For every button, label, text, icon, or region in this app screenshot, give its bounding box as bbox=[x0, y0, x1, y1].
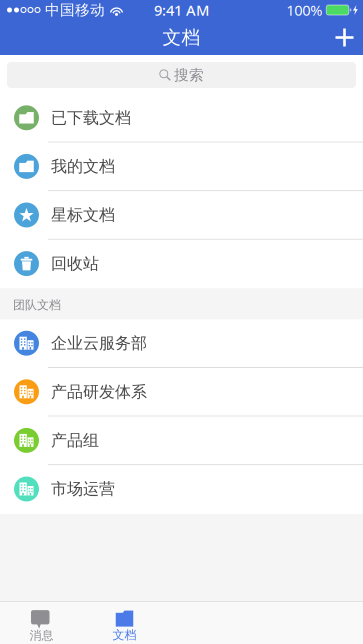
button[interactable]: 已下载文档 bbox=[0, 94, 363, 143]
button[interactable]: 消息 bbox=[0, 602, 83, 644]
staticText: 产品组 bbox=[51, 431, 99, 450]
button[interactable]: 星标文档 bbox=[0, 191, 363, 240]
staticText: 团队文档 bbox=[13, 297, 61, 312]
button[interactable]: 我的文档 bbox=[0, 143, 363, 191]
button[interactable]: 企业云服务部 bbox=[0, 319, 363, 368]
staticText: 市场运营 bbox=[51, 479, 115, 499]
button[interactable]: 市场运营 bbox=[0, 465, 363, 514]
button[interactable]: 产品研发体系 bbox=[0, 368, 363, 417]
staticText: 文档 bbox=[112, 628, 136, 642]
button[interactable]: 产品组 bbox=[0, 417, 363, 465]
staticText: 文档 bbox=[162, 26, 200, 49]
staticText: 消息 bbox=[29, 628, 53, 643]
staticText: 搜索 bbox=[174, 66, 204, 84]
staticText: 已下载文档 bbox=[51, 108, 131, 128]
staticText: 企业云服务部 bbox=[51, 333, 147, 353]
button[interactable]: 回收站 bbox=[0, 240, 363, 288]
button[interactable]: 文档 bbox=[83, 602, 166, 644]
staticText: 9:41 AM bbox=[154, 0, 209, 20]
staticText: 星标文档 bbox=[51, 205, 115, 225]
staticText: 我的文档 bbox=[51, 157, 115, 176]
button[interactable]: New document bbox=[326, 20, 363, 55]
button[interactable]: 搜索 bbox=[0, 55, 363, 94]
staticText: 中国移动 bbox=[45, 1, 105, 19]
staticText: 产品研发体系 bbox=[51, 382, 147, 402]
staticText: 回收站 bbox=[51, 254, 99, 273]
staticText: 100% bbox=[286, 0, 322, 20]
